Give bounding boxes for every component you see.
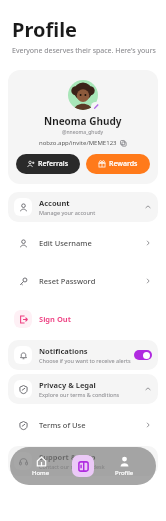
staticText: Nneoma Ghudy (44, 114, 122, 128)
button[interactable]: Terms of Use (8, 410, 158, 440)
button[interactable]: Support & Help (8, 446, 158, 476)
button[interactable]: Reset Password (8, 266, 158, 296)
staticText: Manage your account (39, 209, 96, 216)
staticText: Referrals (38, 159, 69, 169)
button[interactable]: Notifications (8, 340, 158, 370)
staticText: Choose if you want to receive alerts (39, 357, 131, 364)
button[interactable]: Notifications toggle (134, 350, 152, 360)
other: Copy link (120, 140, 127, 147)
staticText: Support & Help (39, 452, 96, 462)
staticText: Profile (12, 16, 78, 43)
staticText: Home (32, 469, 50, 477)
button[interactable]: Edit Username (8, 228, 158, 258)
button[interactable]: Rewards (86, 154, 150, 174)
staticText: Sign Out (39, 314, 152, 324)
staticText: Privacy & Legal (39, 380, 96, 390)
button[interactable]: Spaces (72, 455, 94, 477)
button[interactable]: nobzo.app/invite/MEME123 (37, 139, 129, 147)
staticText: Terms of Use (39, 420, 144, 430)
button[interactable]: Home (26, 454, 56, 479)
staticText: Reset Password (39, 276, 144, 286)
button[interactable]: Referrals (16, 154, 80, 174)
button[interactable]: Profile (109, 454, 140, 479)
staticText: Profile (115, 469, 134, 477)
staticText: nobzo.app/invite/MEME123 (39, 139, 117, 147)
staticText: Account (39, 198, 70, 208)
button[interactable]: Privacy & Legal (8, 374, 158, 404)
staticText: Explore our terms & conditions (39, 391, 120, 398)
staticText: Rewards (109, 159, 138, 169)
staticText: @nneoma_ghudy (62, 129, 104, 136)
staticText: Everyone deserves their space. Here's yo… (12, 46, 156, 56)
button[interactable]: Account (8, 192, 158, 222)
button[interactable]: Sign Out (8, 304, 158, 334)
staticText: Notifications (39, 346, 88, 356)
staticText: Contact our support desk (39, 463, 105, 470)
button[interactable]: Edit avatar (91, 102, 100, 111)
staticText: Edit Username (39, 238, 144, 248)
